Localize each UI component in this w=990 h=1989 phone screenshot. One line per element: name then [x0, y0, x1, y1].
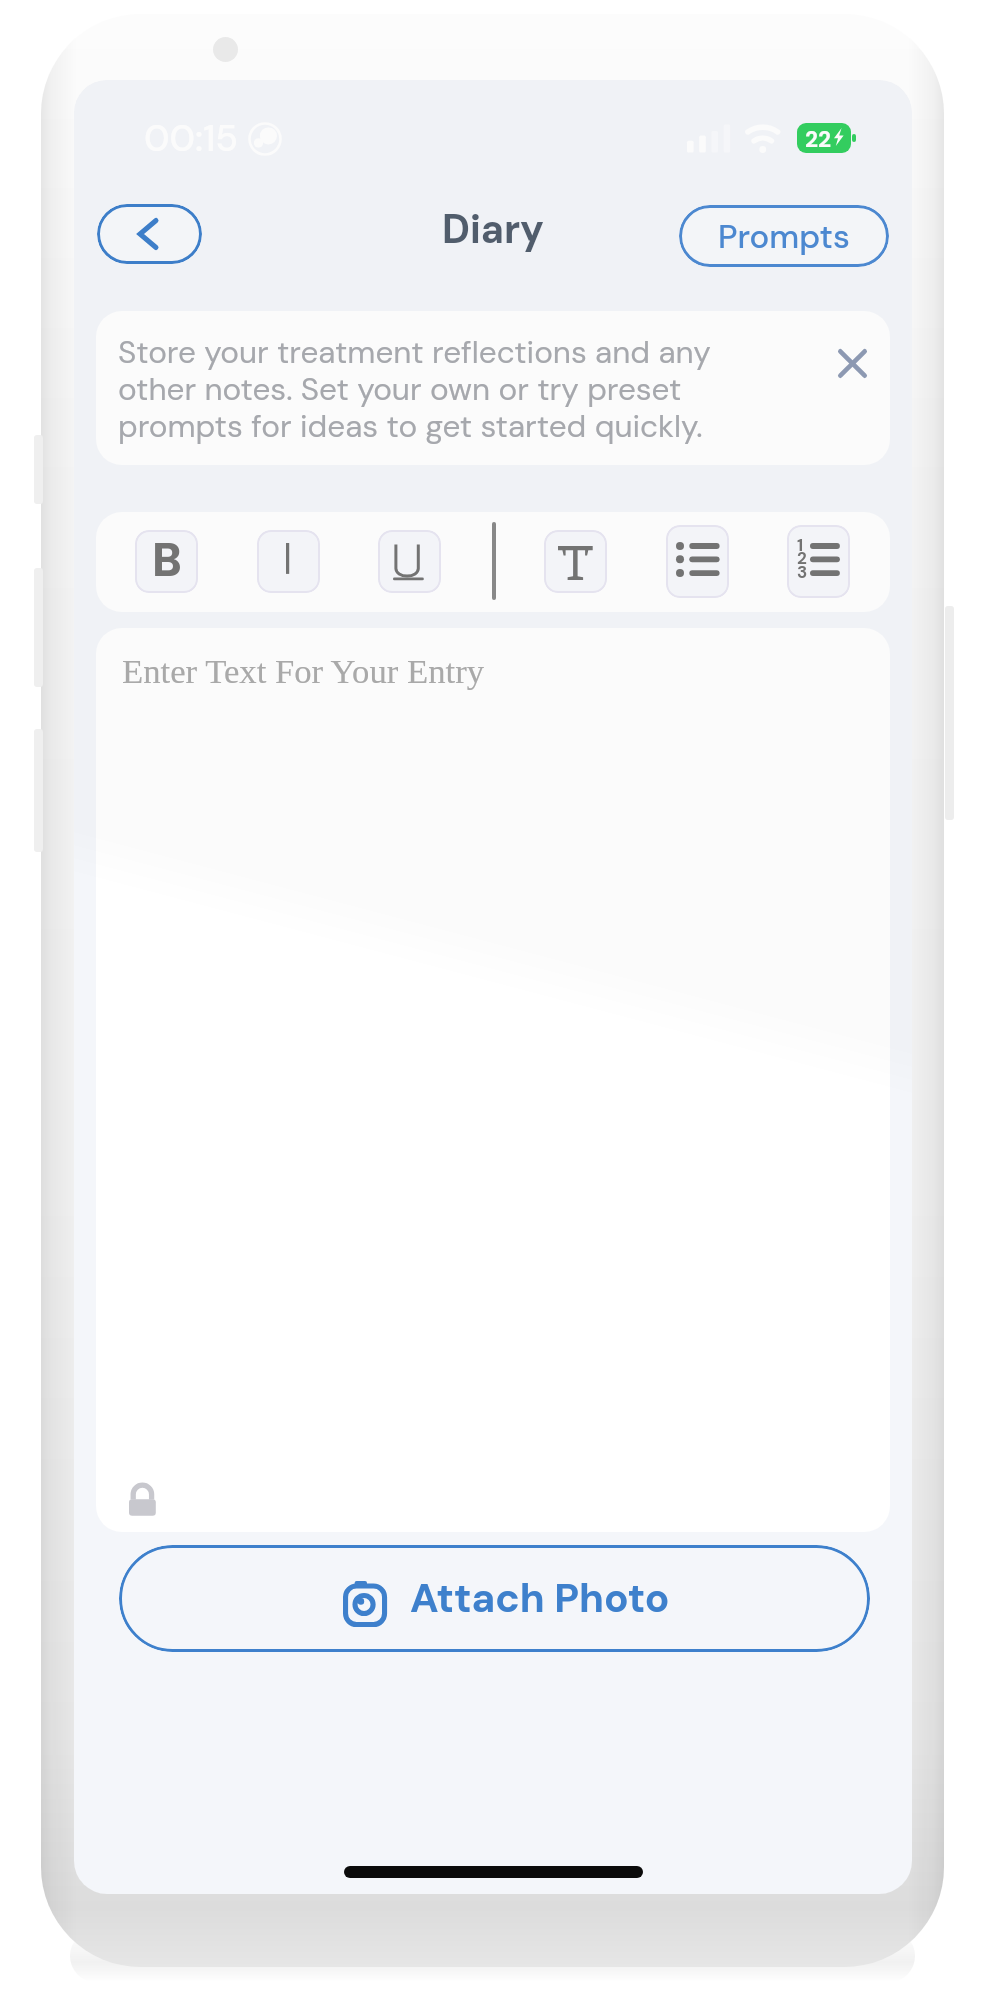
- button[interactable]: Close: [824, 336, 886, 392]
- staticText: Store your treatment reflections and any…: [118, 332, 711, 447]
- button[interactable]: Prompts: [679, 205, 889, 267]
- staticText: 3: [797, 561, 808, 583]
- staticText: 22: [805, 125, 832, 154]
- button[interactable]: Entry text field: [96, 628, 890, 1532]
- staticText: Diary: [442, 204, 544, 255]
- button[interactable]: Attach Photo: [119, 1545, 870, 1652]
- staticText: Attach Photo: [410, 1572, 670, 1625]
- button[interactable]: Bold: [135, 530, 198, 593]
- button[interactable]: Italic: [257, 530, 320, 593]
- button[interactable]: Bulleted list: [666, 525, 729, 598]
- button[interactable]: Back: [97, 204, 202, 264]
- staticText: 00:15: [144, 114, 238, 162]
- staticText: B: [152, 530, 182, 590]
- staticText: Prompts: [718, 215, 850, 258]
- staticText: 2: [797, 547, 807, 569]
- staticText: 1: [797, 534, 804, 556]
- button[interactable]: Entry is private: [119, 1476, 169, 1526]
- button[interactable]: Underline: [378, 530, 441, 593]
- button[interactable]: Text style: [544, 530, 607, 593]
- staticText: Enter Text For Your Entry: [122, 652, 485, 690]
- button[interactable]: Numbered list: [787, 525, 850, 598]
